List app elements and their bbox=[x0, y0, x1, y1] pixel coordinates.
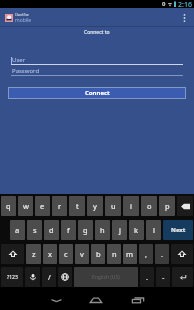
button[interactable]: Shift bbox=[171, 244, 193, 264]
button[interactable]: m bbox=[123, 244, 137, 264]
button[interactable]: x bbox=[43, 244, 57, 264]
button[interactable]: Change language bbox=[58, 267, 72, 287]
button[interactable]: n bbox=[107, 244, 121, 264]
staticText: Connect bbox=[85, 89, 110, 97]
button[interactable]: v bbox=[75, 244, 89, 264]
staticText: g bbox=[83, 225, 88, 235]
button[interactable]: a bbox=[10, 220, 25, 240]
staticText: . bbox=[161, 249, 164, 259]
staticText: m bbox=[126, 249, 134, 259]
button[interactable]: c bbox=[59, 244, 73, 264]
button[interactable]: t bbox=[69, 196, 85, 216]
staticText: v bbox=[80, 249, 84, 259]
button[interactable]: Shift bbox=[1, 244, 24, 264]
button[interactable]: j bbox=[112, 220, 127, 240]
staticText: e bbox=[40, 201, 45, 211]
staticText: s bbox=[33, 225, 37, 235]
staticText: b bbox=[96, 249, 101, 259]
button[interactable]: e bbox=[35, 196, 50, 216]
staticText: Connect to bbox=[84, 29, 110, 36]
staticText: ChurchTrac bbox=[15, 13, 29, 17]
staticText: / bbox=[48, 272, 51, 282]
button[interactable]: Voice input bbox=[25, 267, 40, 287]
staticText: Next bbox=[171, 226, 186, 234]
button[interactable]: w bbox=[18, 196, 33, 216]
button[interactable]: . bbox=[140, 267, 154, 287]
button[interactable]: y bbox=[87, 196, 103, 216]
staticText: h bbox=[100, 225, 105, 235]
staticText: 2:16 bbox=[178, 0, 192, 8]
button[interactable]: u bbox=[105, 196, 121, 216]
button[interactable]: Back bbox=[45, 290, 67, 310]
button[interactable]: Recent apps bbox=[127, 290, 149, 310]
staticText: l bbox=[153, 225, 155, 235]
button[interactable]: s bbox=[27, 220, 42, 240]
button[interactable]: - bbox=[156, 267, 170, 287]
button[interactable]: Connect bbox=[8, 87, 186, 99]
staticText: c bbox=[64, 249, 68, 259]
staticText: . bbox=[146, 272, 149, 282]
staticText: i bbox=[130, 201, 132, 211]
button[interactable]: Next bbox=[163, 220, 193, 240]
staticText: User bbox=[12, 56, 26, 64]
staticText: f bbox=[67, 225, 70, 235]
button[interactable]: q bbox=[1, 196, 16, 216]
staticText: d bbox=[49, 225, 54, 235]
staticText: z bbox=[32, 249, 36, 259]
button[interactable]: i bbox=[123, 196, 139, 216]
button[interactable]: b bbox=[91, 244, 105, 264]
staticText: x bbox=[48, 249, 52, 259]
staticText: , bbox=[145, 249, 148, 259]
staticText: y bbox=[93, 201, 97, 211]
staticText: a bbox=[15, 225, 20, 235]
button[interactable]: Backspace bbox=[177, 196, 193, 216]
button[interactable]: k bbox=[129, 220, 144, 240]
staticText: 0 bbox=[162, 0, 166, 8]
staticText: p bbox=[165, 201, 170, 211]
button[interactable]: More options bbox=[176, 10, 192, 26]
button[interactable]: , bbox=[139, 244, 153, 264]
staticText: mobile bbox=[15, 17, 32, 24]
button[interactable]: z bbox=[26, 244, 41, 264]
staticText: r bbox=[58, 201, 62, 211]
button[interactable]: / bbox=[42, 267, 56, 287]
button[interactable]: Enter bbox=[172, 267, 193, 287]
staticText: u bbox=[111, 201, 116, 211]
staticText: w bbox=[23, 201, 29, 211]
button[interactable]: f bbox=[61, 220, 76, 240]
staticText: q bbox=[6, 201, 11, 211]
staticText: ?123 bbox=[7, 274, 18, 281]
button[interactable]: English (US) bbox=[74, 267, 138, 287]
staticText: n bbox=[112, 249, 117, 259]
staticText: k bbox=[134, 225, 139, 235]
staticText: Password bbox=[12, 67, 40, 75]
button[interactable]: . bbox=[155, 244, 169, 264]
button[interactable]: d bbox=[44, 220, 59, 240]
staticText: j bbox=[119, 225, 121, 235]
button[interactable]: r bbox=[52, 196, 67, 216]
staticText: t bbox=[76, 201, 79, 211]
button[interactable]: h bbox=[95, 220, 110, 240]
staticText: - bbox=[162, 272, 165, 282]
button[interactable]: Home bbox=[85, 290, 107, 310]
staticText: English (US) bbox=[92, 274, 120, 281]
button[interactable]: o bbox=[141, 196, 157, 216]
staticText: o bbox=[147, 201, 152, 211]
button[interactable]: l bbox=[146, 220, 161, 240]
button[interactable]: p bbox=[159, 196, 175, 216]
button[interactable]: ?123 bbox=[1, 267, 23, 287]
button[interactable]: g bbox=[78, 220, 93, 240]
